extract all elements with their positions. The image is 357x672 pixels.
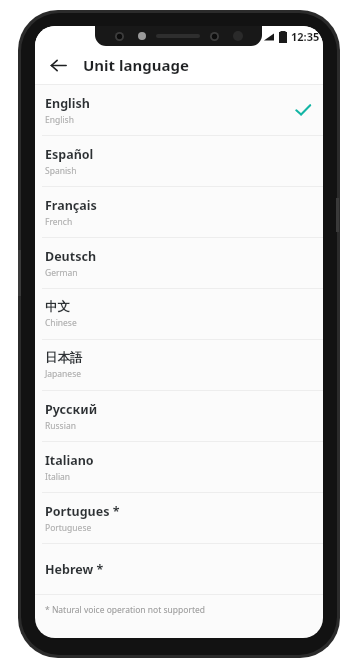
staticText: English <box>45 95 90 112</box>
button[interactable]: Hebrew * <box>35 544 323 594</box>
staticText: English <box>45 114 74 126</box>
staticText: Unit language <box>83 55 189 75</box>
staticText: * Natural voice operation not supported <box>45 604 206 616</box>
button[interactable]: Italiano <box>35 442 323 492</box>
staticText: Portugues * <box>45 503 120 520</box>
button[interactable]: Español <box>35 136 323 186</box>
staticText: Русский <box>45 401 98 418</box>
staticText: Italian <box>45 471 71 483</box>
staticText: Deutsch <box>45 248 97 265</box>
button[interactable]: Portugues * <box>35 493 323 543</box>
staticText: French <box>45 216 73 228</box>
button[interactable]: 中文 <box>35 289 323 339</box>
staticText: Russian <box>45 420 76 432</box>
staticText: German <box>45 267 78 279</box>
button[interactable]: Français <box>35 187 323 237</box>
staticText: Chinese <box>45 317 77 329</box>
staticText: 12:35 <box>291 29 320 44</box>
staticText: Italiano <box>45 452 94 469</box>
staticText: 日本語 <box>45 350 83 366</box>
staticText: Español <box>45 146 94 163</box>
staticText: 中文 <box>45 299 70 315</box>
button[interactable]: Deutsch <box>35 238 323 288</box>
staticText: Japanese <box>45 368 81 380</box>
staticText: Français <box>45 197 97 214</box>
staticText: Portuguese <box>45 522 92 534</box>
staticText: Hebrew * <box>45 561 104 578</box>
button[interactable]: Русский <box>35 391 323 441</box>
button[interactable]: Back <box>41 48 75 82</box>
button[interactable]: 日本語 <box>35 340 323 390</box>
button[interactable]: English <box>35 85 323 135</box>
staticText: Spanish <box>45 165 77 177</box>
